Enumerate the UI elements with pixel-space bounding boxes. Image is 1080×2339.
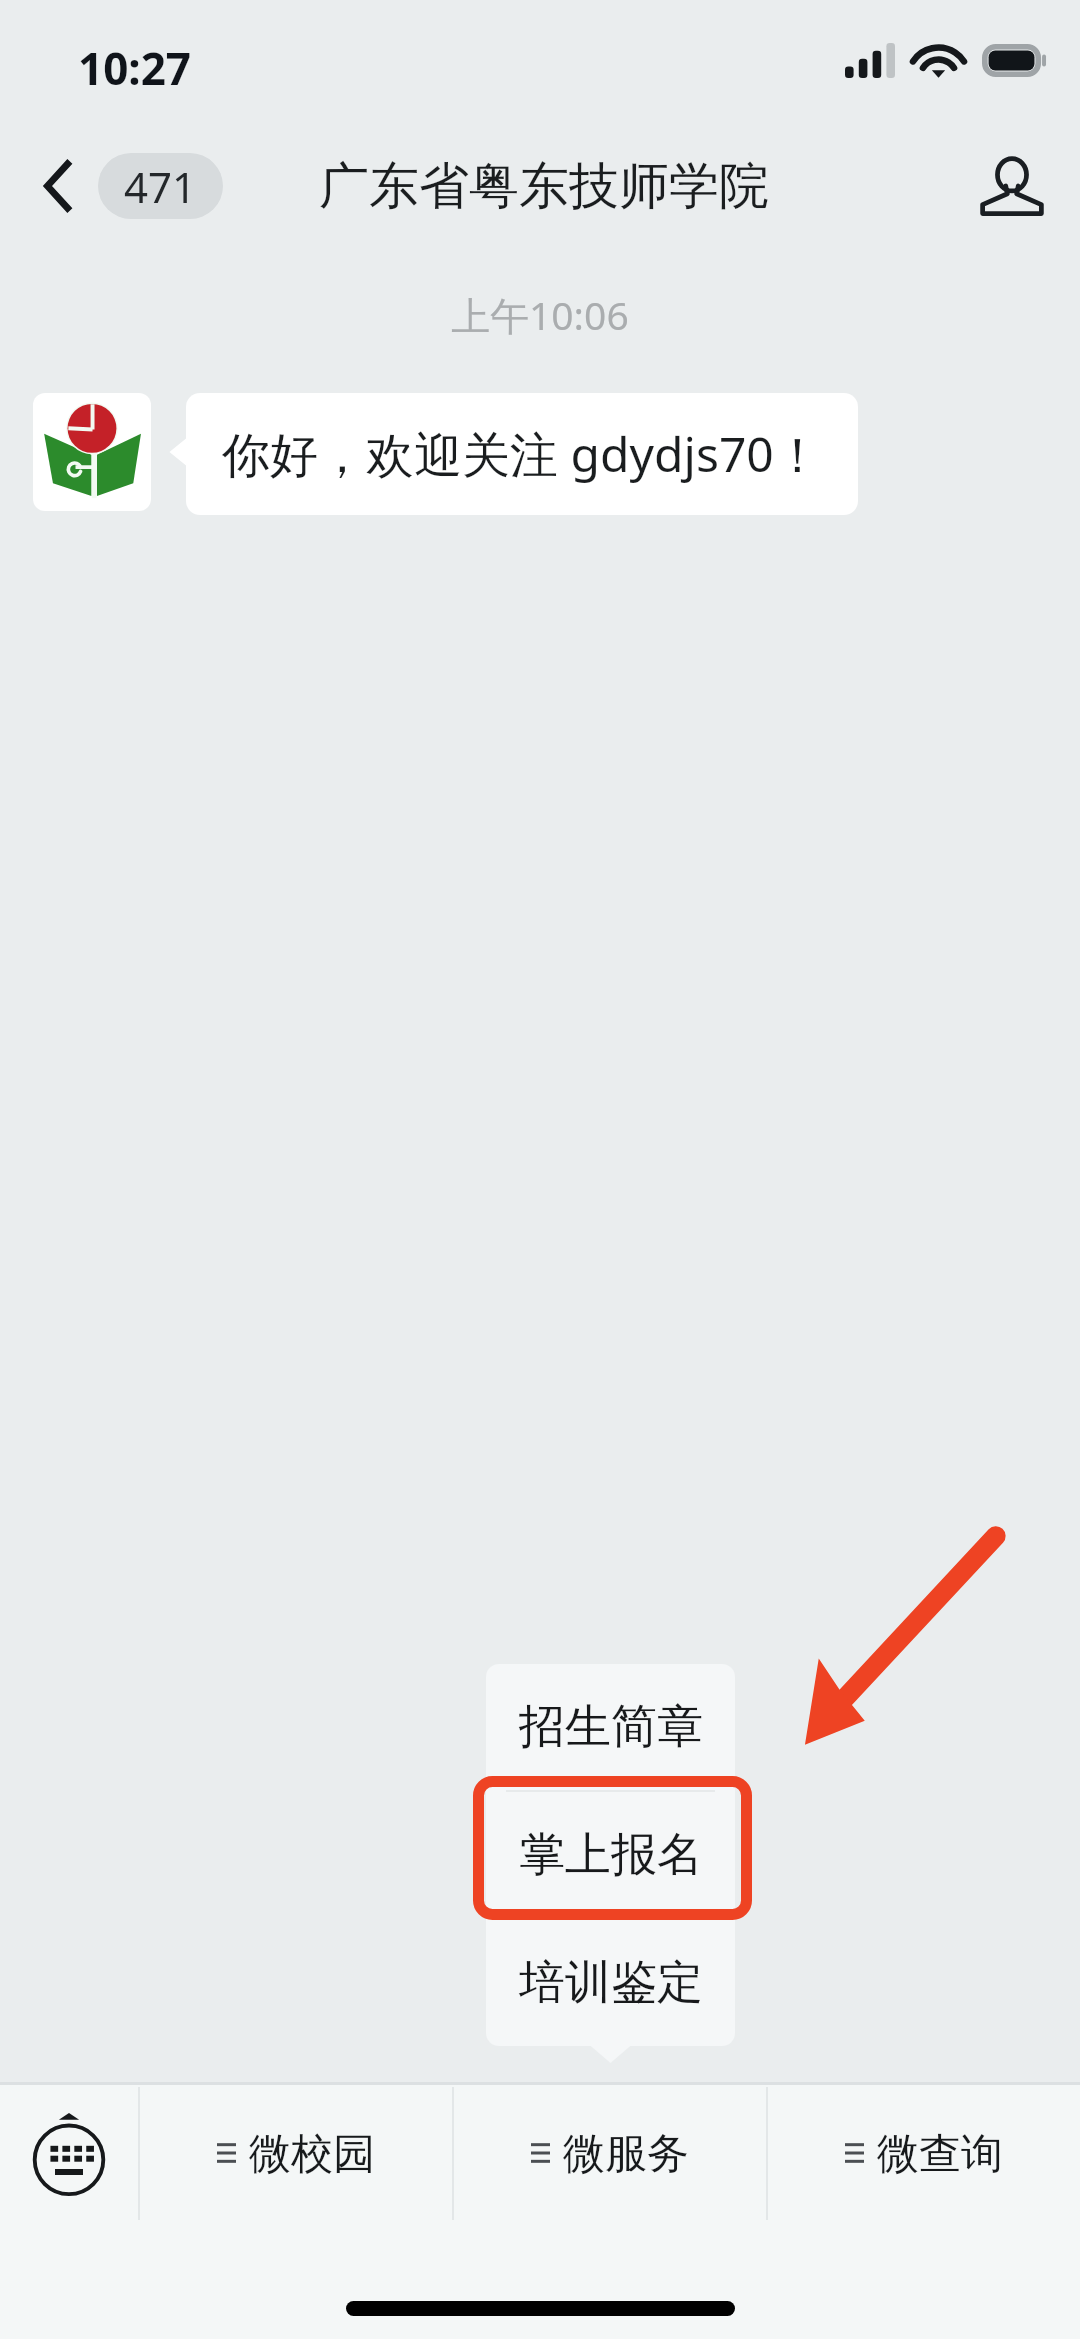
staticText: 微查询 bbox=[877, 2128, 1003, 2181]
staticText: 微服务 bbox=[563, 2128, 689, 2181]
button[interactable]: 招生简章 bbox=[486, 1664, 735, 1790]
button[interactable]: 微查询 bbox=[768, 2085, 1080, 2221]
staticText: 10:27 bbox=[78, 38, 192, 98]
button[interactable]: Keyboard bbox=[0, 2085, 138, 2221]
button[interactable]: Back, 471 unread bbox=[42, 153, 223, 219]
staticText: 掌上报名 bbox=[519, 1826, 703, 1884]
button[interactable]: 微服务 bbox=[454, 2085, 766, 2221]
staticText: 471 bbox=[124, 158, 197, 215]
button[interactable]: Contact profile bbox=[966, 140, 1058, 232]
staticText: 广东省粤东技师学院 bbox=[319, 155, 769, 218]
button[interactable]: 掌上报名 bbox=[486, 1792, 735, 1918]
staticText: 微校园 bbox=[249, 2128, 375, 2181]
button[interactable]: Official account avatar bbox=[33, 393, 151, 511]
button[interactable]: 培训鉴定 bbox=[486, 1920, 735, 2046]
staticText: 上午10:06 bbox=[451, 288, 629, 341]
button[interactable]: 你好，欢迎关注 gdydjs70！ bbox=[186, 393, 858, 515]
staticText: 招生简章 bbox=[519, 1698, 703, 1756]
button[interactable]: 微校园 bbox=[140, 2085, 452, 2221]
staticText: 你好，欢迎关注 gdydjs70！ bbox=[222, 421, 822, 487]
staticText: 培训鉴定 bbox=[519, 1954, 703, 2012]
